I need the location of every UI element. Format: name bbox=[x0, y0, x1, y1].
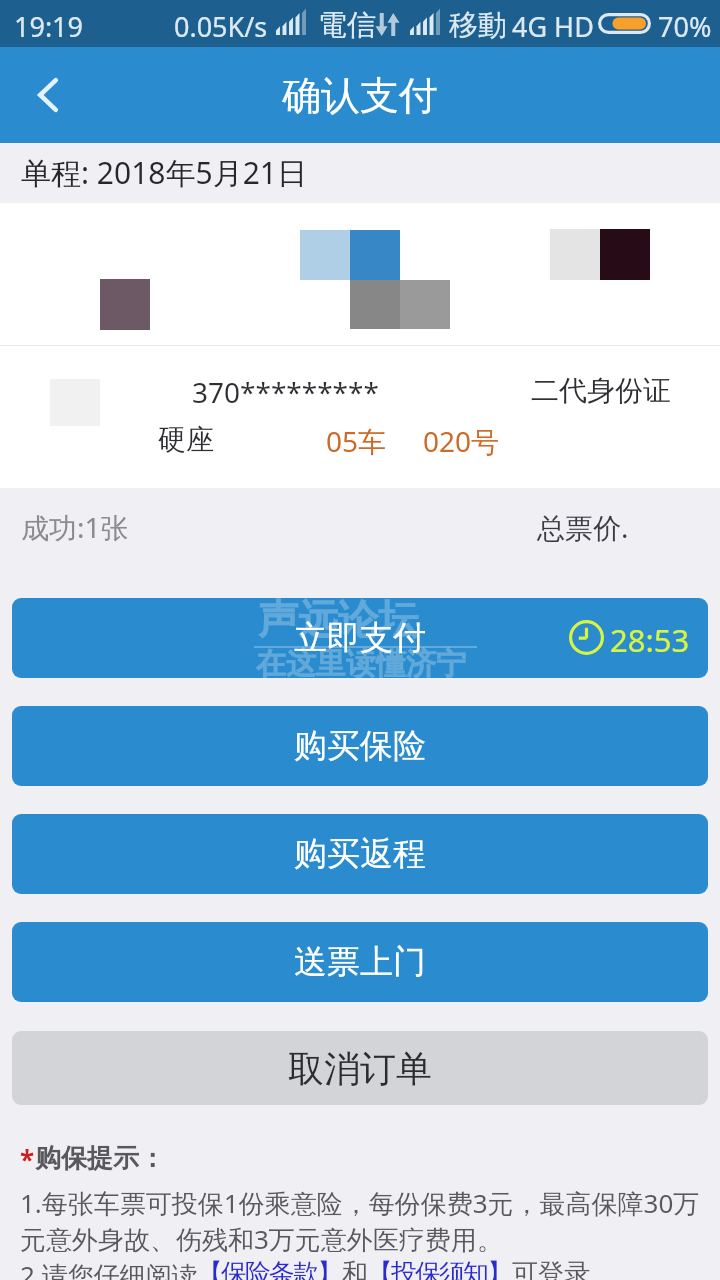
staticText: 1.每张车票可投保1份乘意险，每份保费3元，最高保障30万 bbox=[20, 1185, 700, 1221]
staticText: 购买保险 bbox=[294, 725, 426, 767]
staticText: 19:19 bbox=[14, 8, 84, 45]
staticText: 和 bbox=[342, 1257, 368, 1280]
button[interactable]: 取消订单 bbox=[12, 1031, 708, 1105]
staticText: 可登录 bbox=[512, 1257, 590, 1280]
button[interactable]: 购买返程 bbox=[12, 814, 708, 894]
button[interactable]: Back bbox=[20, 47, 76, 143]
staticText: * bbox=[20, 1142, 35, 1177]
staticText: 购买返程 bbox=[294, 833, 426, 875]
staticText: 70% bbox=[658, 8, 712, 45]
staticText: 在这里读懂济宁 bbox=[256, 645, 466, 678]
staticText: 0.05K/s bbox=[174, 8, 268, 45]
button[interactable]: 购买保险 bbox=[12, 706, 708, 786]
staticText: 移動 bbox=[449, 7, 507, 44]
staticText: 4G HD bbox=[512, 8, 594, 45]
button[interactable]: 送票上门 bbox=[12, 922, 708, 1002]
staticText: 成功:1张 bbox=[21, 508, 129, 546]
staticText: 取消订单 bbox=[288, 1046, 432, 1091]
staticText: 【投保须知】 bbox=[368, 1257, 512, 1280]
staticText: 送票上门 bbox=[294, 941, 426, 983]
staticText: 28:53 bbox=[610, 619, 690, 661]
staticText: 单程: 2018年5月21日 bbox=[21, 152, 307, 193]
staticText: 总票价. bbox=[537, 508, 629, 546]
staticText: 声远论坛 bbox=[258, 598, 418, 644]
staticText: 370********* bbox=[192, 373, 379, 411]
staticText: 電信 bbox=[318, 7, 376, 44]
staticText: 立即支付 bbox=[12, 617, 708, 659]
staticText: 020号 bbox=[423, 422, 500, 460]
staticText: 【保险条款】 bbox=[198, 1257, 342, 1280]
button[interactable]: 声远论坛 bbox=[12, 598, 708, 678]
staticText: 确认支付 bbox=[0, 71, 720, 120]
staticText: 元意外身故、伤残和3万元意外医疗费用。 bbox=[20, 1221, 503, 1257]
staticText: 05车 bbox=[326, 422, 387, 460]
staticText: 2.请您仔细阅读 bbox=[20, 1257, 198, 1280]
staticText: 购保提示： bbox=[35, 1142, 165, 1175]
staticText: 硬座 bbox=[158, 422, 214, 457]
staticText: 二代身份证 bbox=[531, 373, 671, 408]
